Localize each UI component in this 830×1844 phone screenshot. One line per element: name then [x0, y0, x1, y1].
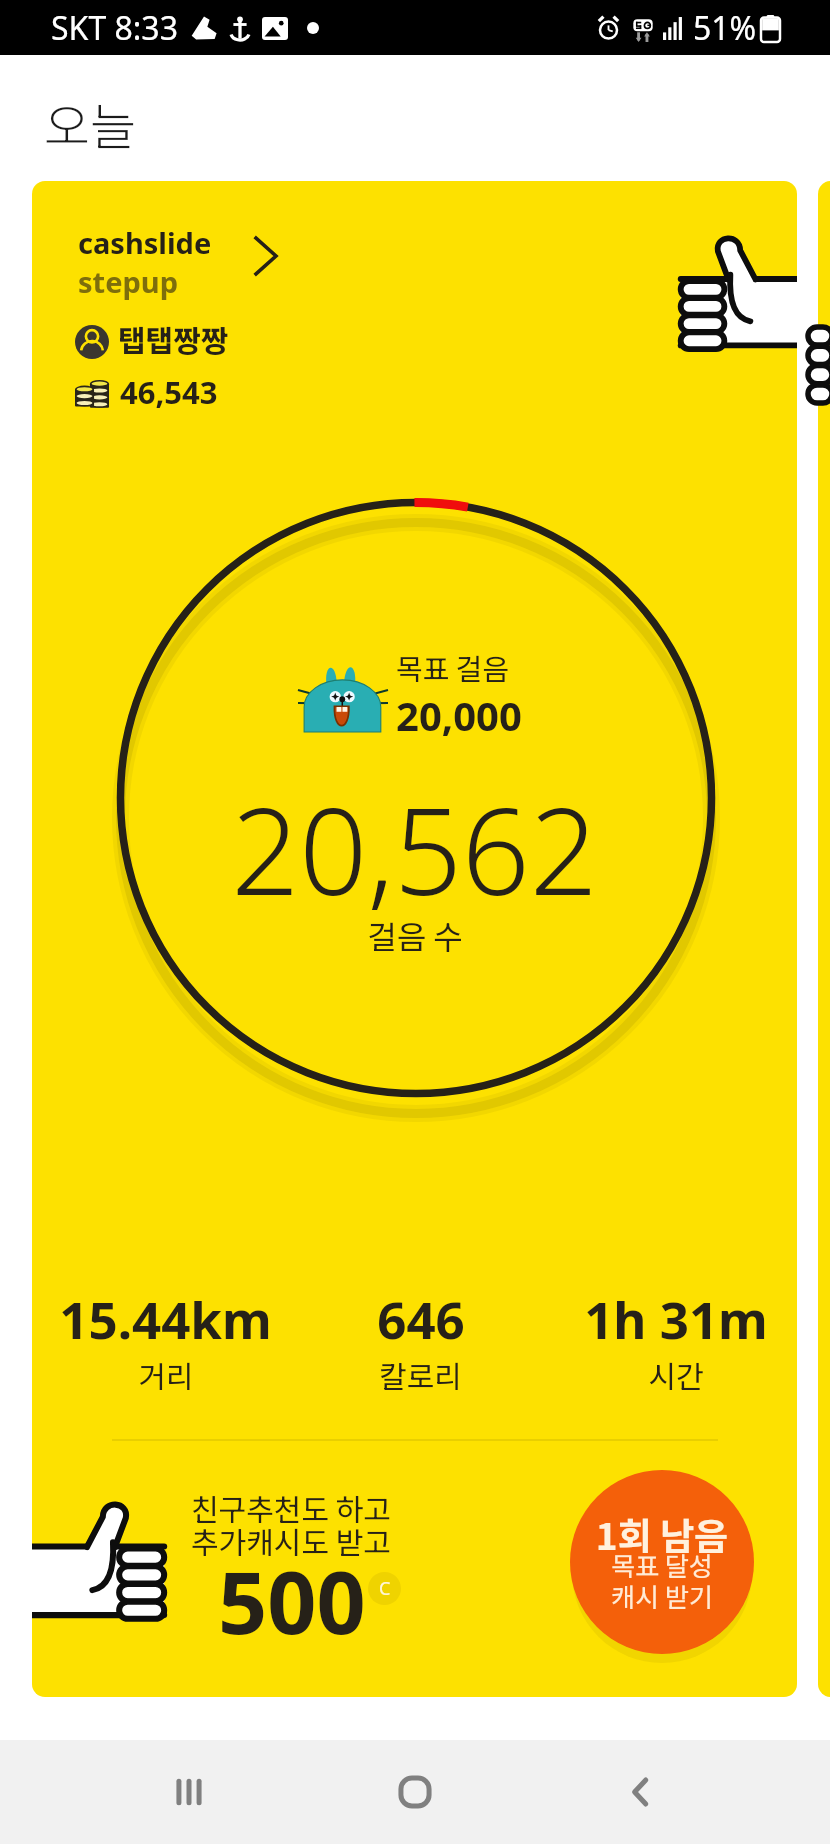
- button[interactable]: 1회 남음: [570, 1470, 754, 1654]
- staticText: 20,562: [231, 768, 598, 930]
- staticText: 46,543: [120, 371, 218, 413]
- staticText: 캐시 받기: [570, 1577, 754, 1615]
- button[interactable]: cashslide: [32, 181, 797, 1697]
- staticText: 거리: [138, 1353, 194, 1396]
- staticText: 시간: [648, 1353, 704, 1396]
- staticText: 오늘: [44, 87, 136, 159]
- staticText: SKT 8:33: [51, 6, 178, 50]
- staticText: 걸음 수: [367, 912, 463, 958]
- staticText: 목표 걸음: [396, 646, 510, 688]
- button[interactable]: Home: [378, 1755, 452, 1829]
- staticText: 1h 31m: [584, 1284, 768, 1353]
- staticText: 칼로리: [379, 1353, 462, 1396]
- staticText: 목표 달성: [570, 1546, 754, 1584]
- button[interactable]: Recent apps: [152, 1755, 226, 1829]
- staticText: cashslide: [78, 223, 212, 262]
- staticText: 20,000: [396, 688, 522, 742]
- staticText: 1회 남음: [570, 1507, 754, 1561]
- staticText: 탭탭짱짱: [118, 317, 229, 360]
- staticText: 추가캐시도 받고: [191, 1519, 391, 1562]
- staticText: C: [379, 1576, 391, 1601]
- staticText: 500: [218, 1542, 366, 1659]
- staticText: 646: [377, 1284, 465, 1353]
- button[interactable]: Back: [604, 1755, 678, 1829]
- staticText: stepup: [78, 262, 178, 301]
- staticText: 51%: [693, 6, 757, 50]
- staticText: 15.44km: [59, 1284, 272, 1353]
- staticText: 친구추천도 하고: [191, 1486, 391, 1529]
